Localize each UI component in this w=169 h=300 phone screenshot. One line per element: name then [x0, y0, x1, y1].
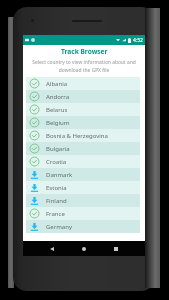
staticText: Finland: [46, 197, 67, 205]
staticText: France: [46, 210, 65, 218]
staticText: Belgium: [46, 119, 70, 127]
staticText: Track Browser: [61, 47, 108, 56]
staticText: Croatia: [46, 158, 67, 166]
button[interactable]: Bulgaria: [26, 142, 140, 155]
button[interactable]: Albania: [26, 77, 140, 90]
staticText: Estonia: [46, 184, 67, 192]
button[interactable]: Estonia: [26, 181, 140, 194]
staticText: Select country to view information about…: [26, 59, 142, 73]
button[interactable]: Back: [46, 243, 58, 255]
staticText: Belarus: [46, 106, 68, 114]
button[interactable]: Recent apps: [110, 243, 122, 255]
button[interactable]: Finland: [26, 194, 140, 207]
button[interactable]: France: [26, 207, 140, 220]
staticText: Germany: [46, 223, 72, 231]
staticText: Albania: [46, 80, 68, 88]
button[interactable]: Danmark: [26, 168, 140, 181]
button[interactable]: Home: [78, 243, 90, 255]
button[interactable]: Belarus: [26, 103, 140, 116]
button[interactable]: Andorra: [26, 90, 140, 103]
button[interactable]: Belgium: [26, 116, 140, 129]
button[interactable]: Croatia: [26, 155, 140, 168]
staticText: Andorra: [46, 93, 70, 101]
button[interactable]: Germany: [26, 220, 140, 233]
staticText: Danmark: [46, 171, 73, 179]
staticText: Bosnia & Herzegovina: [46, 132, 108, 140]
staticText: Bulgaria: [46, 145, 70, 153]
button[interactable]: Bosnia & Herzegovina: [26, 129, 140, 142]
staticText: 4:52: [133, 37, 143, 44]
